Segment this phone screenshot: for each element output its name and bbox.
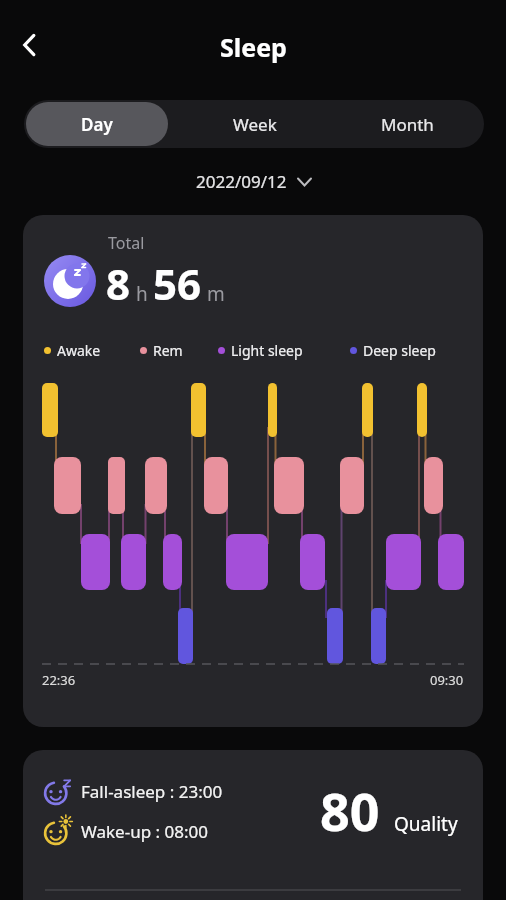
staticText: Week (233, 113, 277, 136)
staticText: Total (108, 232, 145, 254)
staticText: Rem (153, 341, 183, 360)
staticText: 56 (153, 255, 202, 312)
staticText: Quality (394, 811, 458, 837)
staticText: Light sleep (231, 341, 303, 360)
button[interactable]: 2022/09/12 (196, 170, 311, 193)
button[interactable] (18, 33, 42, 57)
staticText: Month (381, 113, 434, 136)
staticText: 80 (320, 775, 380, 846)
button[interactable]: Day (26, 102, 168, 146)
staticText: Sleep (220, 30, 287, 64)
button[interactable]: Month (331, 100, 484, 148)
staticText: Awake (57, 341, 101, 360)
staticText: Wake-up : 08:00 (81, 820, 208, 843)
staticText: Deep sleep (363, 341, 436, 360)
button[interactable]: Week (178, 100, 331, 148)
staticText: 22:36 (42, 671, 76, 689)
staticText: 09:30 (430, 671, 464, 689)
staticText: m (202, 281, 225, 307)
staticText: 2022/09/12 (196, 170, 287, 193)
staticText: h (131, 281, 153, 307)
staticText: Day (81, 113, 113, 136)
staticText: 8 (106, 255, 131, 312)
staticText: Fall-asleep : 23:00 (81, 780, 223, 803)
